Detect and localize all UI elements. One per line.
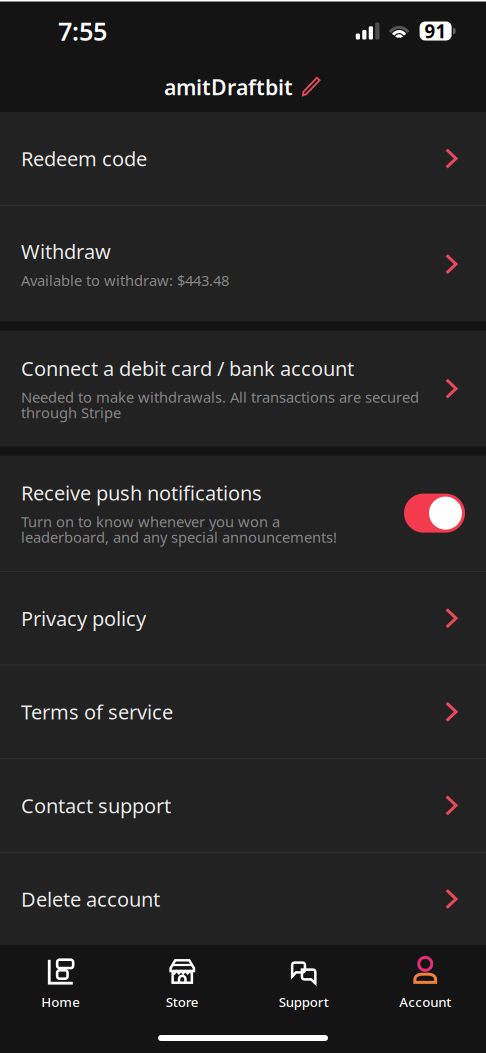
button[interactable]: Withdraw xyxy=(0,207,486,322)
button[interactable]: Connect a debit card / bank account xyxy=(0,331,486,447)
button[interactable]: Support xyxy=(243,959,364,1007)
staticText: Privacy policy xyxy=(21,605,146,631)
staticText: Turn on to know whenever you won a leade… xyxy=(21,512,337,547)
staticText: Redeem code xyxy=(21,145,147,172)
staticText: Terms of service xyxy=(21,698,173,725)
staticText: Support xyxy=(279,993,329,1011)
staticText: Home xyxy=(41,993,80,1011)
staticText: amitDraftbit xyxy=(164,73,293,101)
staticText: 7:55 xyxy=(58,14,107,48)
staticText: Account xyxy=(399,993,451,1011)
button[interactable]: Terms of service xyxy=(0,666,486,758)
staticText: Withdraw xyxy=(21,238,111,265)
button[interactable]: Contact support xyxy=(0,759,486,851)
button[interactable]: Account xyxy=(364,959,486,1007)
staticText: Connect a debit card / bank account xyxy=(21,355,354,381)
button[interactable]: Store xyxy=(121,959,243,1007)
button[interactable]: Privacy policy xyxy=(0,572,486,664)
staticText: 91 xyxy=(425,19,447,43)
button[interactable]: Receive push notifications xyxy=(0,456,486,571)
staticText: Delete account xyxy=(21,886,160,912)
staticText: Available to withdraw: $443.48 xyxy=(21,271,229,290)
staticText: Needed to make withdrawals. All transact… xyxy=(21,387,419,422)
staticText: Contact support xyxy=(21,792,171,819)
button[interactable]: Redeem code xyxy=(0,112,486,205)
button[interactable]: Home xyxy=(0,959,121,1007)
staticText: Store xyxy=(166,993,199,1011)
staticText: Receive push notifications xyxy=(21,479,262,506)
button[interactable]: Delete account xyxy=(0,853,486,945)
